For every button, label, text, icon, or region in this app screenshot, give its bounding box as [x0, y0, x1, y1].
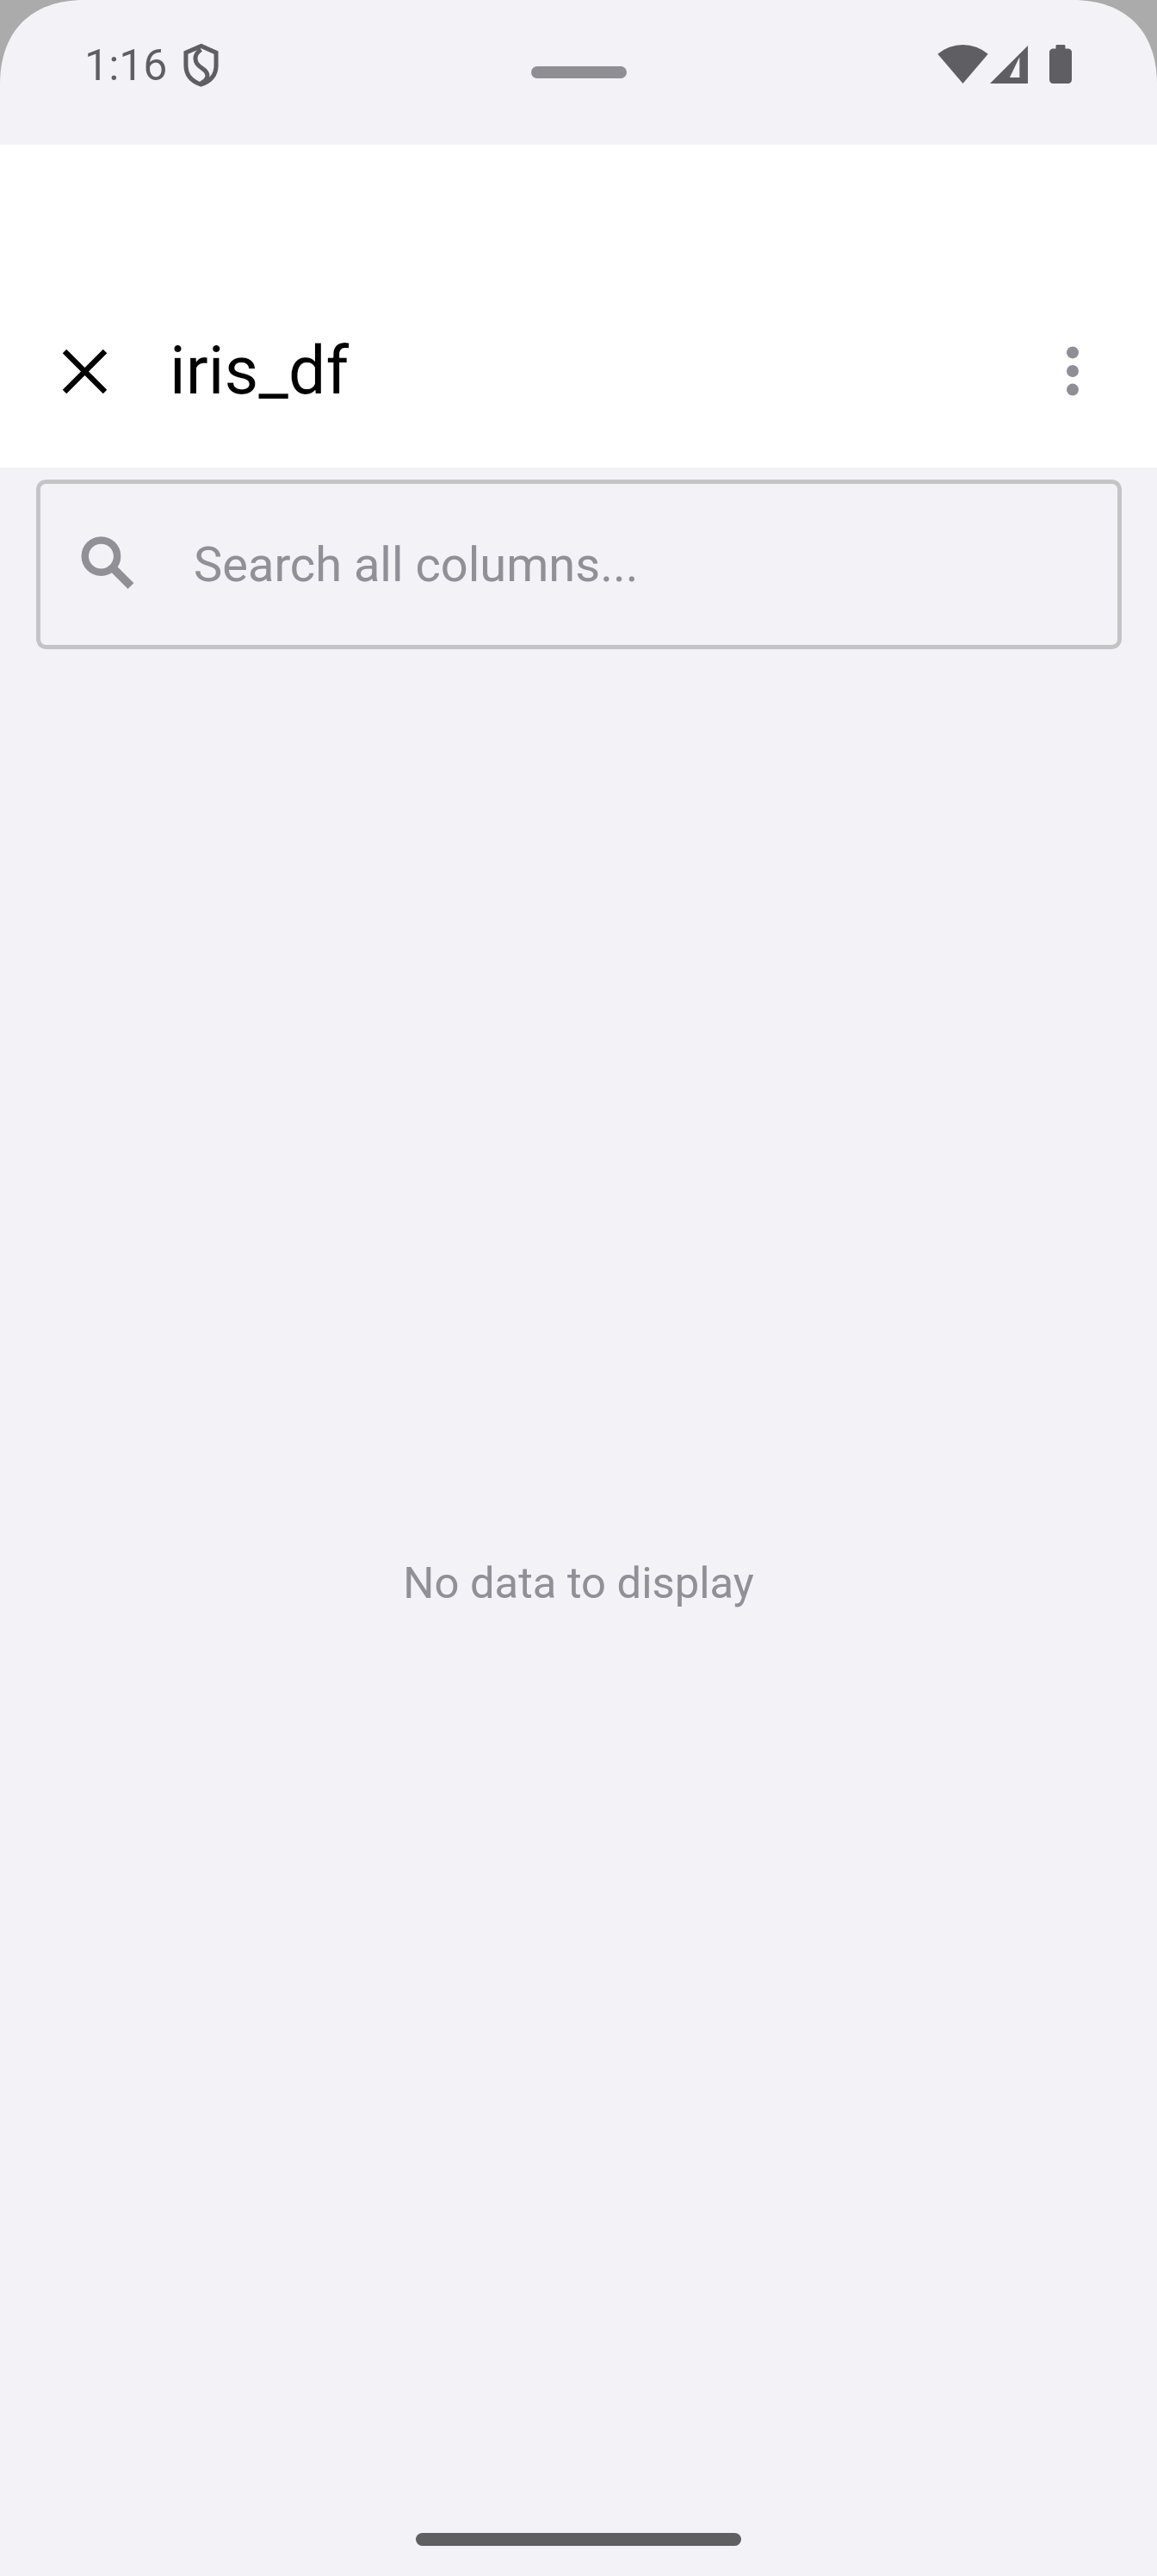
- button[interactable]: More options: [1000, 299, 1145, 443]
- staticText: Search all columns...: [194, 536, 639, 593]
- button[interactable]: Close: [12, 299, 157, 443]
- staticText: 1:16: [84, 40, 168, 91]
- staticText: iris_df: [170, 332, 350, 410]
- button[interactable]: Search all columns: [36, 480, 1122, 649]
- staticText: No data to display: [403, 1557, 754, 1608]
